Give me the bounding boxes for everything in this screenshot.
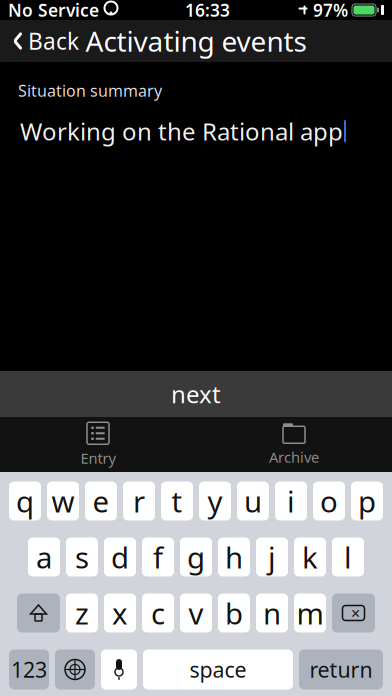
button[interactable]: d (104, 537, 136, 576)
button[interactable]: l (332, 537, 364, 576)
button[interactable]: Dictate (101, 649, 137, 689)
staticText: l (344, 537, 352, 576)
button[interactable]: k (294, 537, 326, 576)
button[interactable]: h (218, 537, 250, 576)
button[interactable]: z (66, 593, 98, 632)
button[interactable]: next (0, 371, 392, 417)
staticText: n (263, 593, 281, 632)
staticText: h (225, 537, 243, 576)
staticText: y (207, 481, 222, 520)
staticText: 97% (313, 0, 348, 21)
button[interactable]: Next keyboard (55, 649, 95, 689)
staticText: c (151, 593, 165, 632)
staticText: r (133, 481, 145, 520)
staticText: b (225, 593, 243, 632)
button[interactable]: u (237, 481, 269, 520)
staticText: f (153, 537, 163, 576)
staticText: k (302, 537, 318, 576)
staticText: next (171, 378, 221, 410)
staticText: a (36, 537, 52, 576)
button[interactable]: c (142, 593, 174, 632)
button[interactable]: Archive (196, 417, 392, 472)
staticText: Working on the Rational app (20, 115, 343, 147)
staticText: m (296, 593, 323, 632)
staticText: g (187, 537, 205, 576)
button[interactable]: r (123, 481, 155, 520)
staticText: × (351, 602, 360, 624)
staticText: x (112, 593, 128, 632)
staticText: p (358, 481, 376, 520)
staticText: space (189, 655, 246, 684)
staticText: Situation summary (18, 80, 162, 101)
button[interactable]: f (142, 537, 174, 576)
staticText: t (171, 481, 182, 520)
button[interactable]: 123 (9, 649, 49, 689)
button[interactable]: g (180, 537, 212, 576)
button[interactable]: i (275, 481, 307, 520)
button[interactable]: o (313, 481, 345, 520)
button[interactable]: j (256, 537, 288, 576)
button[interactable]: Shift (17, 593, 60, 632)
button[interactable]: b (218, 593, 250, 632)
staticText: v (188, 593, 203, 632)
staticText: z (75, 593, 89, 632)
staticText: o (320, 481, 338, 520)
staticText: 123 (11, 655, 47, 684)
button[interactable]: Entry (0, 417, 196, 472)
button[interactable]: Delete (332, 593, 375, 632)
button[interactable]: v (180, 593, 212, 632)
button[interactable]: space (143, 649, 293, 689)
button[interactable]: Back (4, 20, 87, 62)
staticText: w (51, 481, 74, 520)
staticText: return (309, 655, 372, 684)
staticText: 16:33 (185, 0, 230, 21)
staticText: u (244, 481, 262, 520)
button[interactable]: q (9, 481, 41, 520)
staticText: Entry (80, 448, 115, 468)
button[interactable]: p (351, 481, 383, 520)
button[interactable]: s (66, 537, 98, 576)
staticText: i (287, 481, 295, 520)
staticText: Back (28, 26, 79, 56)
button[interactable]: w (47, 481, 79, 520)
staticText: d (111, 537, 129, 576)
staticText: q (16, 481, 34, 520)
staticText: Archive (269, 447, 319, 467)
button[interactable]: a (28, 537, 60, 576)
button[interactable]: x (104, 593, 136, 632)
button[interactable]: y (199, 481, 231, 520)
staticText: No Service (8, 0, 99, 21)
button[interactable]: t (161, 481, 193, 520)
staticText: e (92, 481, 109, 520)
button[interactable]: m (294, 593, 326, 632)
staticText: Activating events (85, 22, 306, 60)
staticText: j (268, 537, 276, 576)
button[interactable]: e (85, 481, 117, 520)
button[interactable]: n (256, 593, 288, 632)
staticText: s (75, 537, 89, 576)
button[interactable]: return (299, 649, 383, 689)
